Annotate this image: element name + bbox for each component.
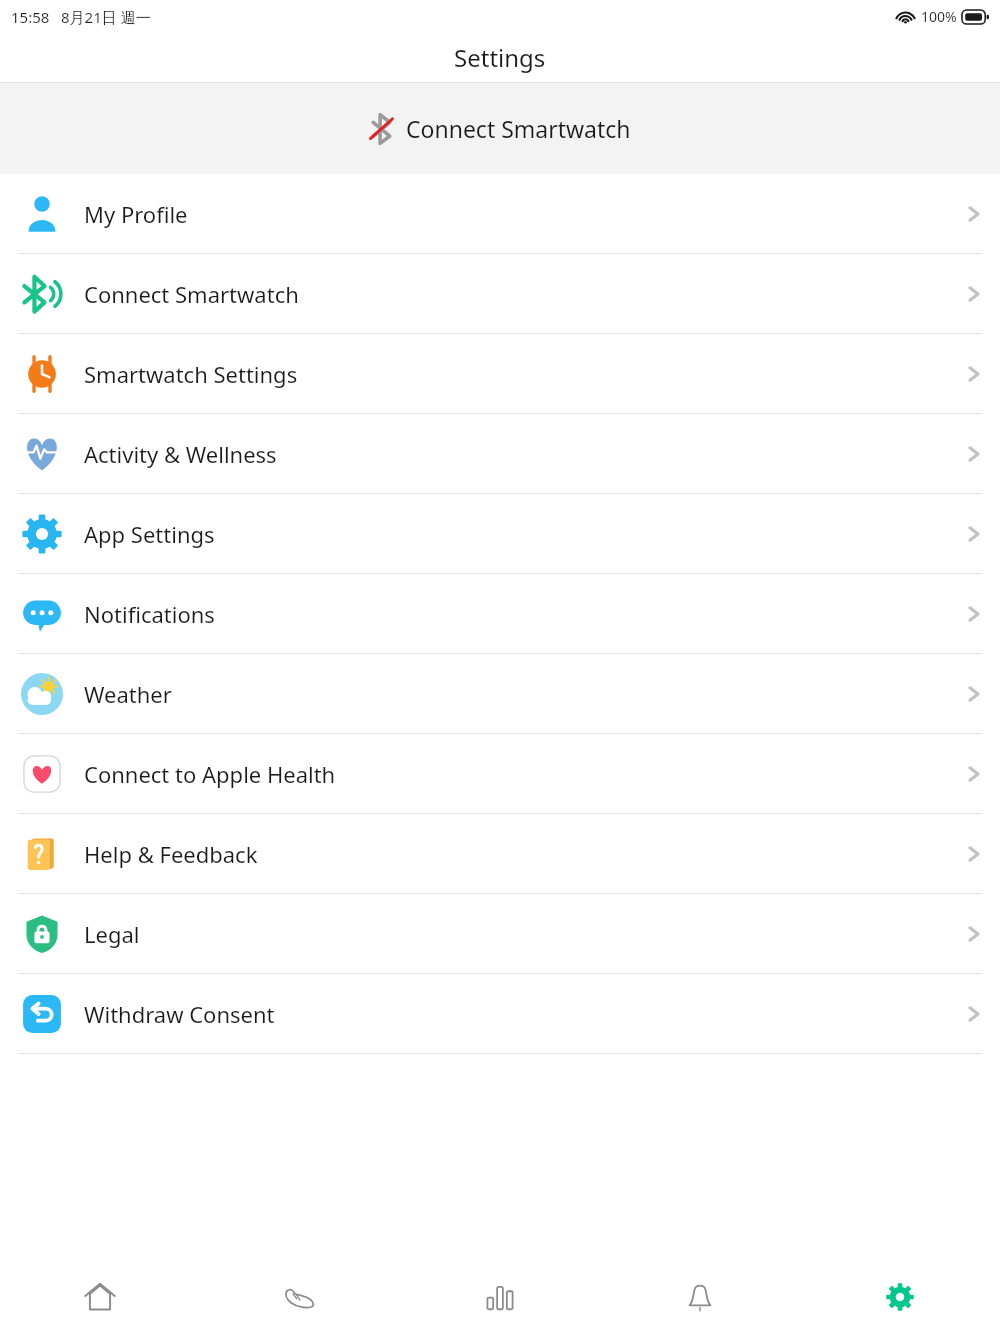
button[interactable]: My Profile: [0, 174, 1000, 253]
button[interactable]: Smartwatch Settings: [0, 334, 1000, 413]
staticText: Connect Smartwatch: [406, 113, 631, 144]
staticText: Settings: [454, 41, 546, 74]
button[interactable]: Home: [0, 1260, 200, 1334]
staticText: Notifications: [84, 599, 966, 629]
staticText: Weather: [84, 679, 966, 709]
staticText: Legal: [84, 919, 966, 949]
button[interactable]: Connect Smartwatch: [0, 83, 1000, 174]
staticText: My Profile: [84, 199, 966, 229]
button[interactable]: Connect Smartwatch: [0, 254, 1000, 333]
button[interactable]: Activity & Wellness: [0, 414, 1000, 493]
staticText: Connect to Apple Health: [84, 759, 966, 789]
staticText: Withdraw Consent: [84, 999, 966, 1029]
button[interactable]: Weather: [0, 654, 1000, 733]
staticText: 15:58: [11, 7, 50, 27]
staticText: 100%: [921, 7, 957, 26]
button[interactable]: Withdraw Consent: [0, 974, 1000, 1053]
button[interactable]: Legal: [0, 894, 1000, 973]
button[interactable]: App Settings: [0, 494, 1000, 573]
staticText: Activity & Wellness: [84, 439, 966, 469]
button[interactable]: Notifications: [0, 574, 1000, 653]
staticText: Help & Feedback: [84, 839, 966, 869]
button[interactable]: Help & Feedback: [0, 814, 1000, 893]
staticText: Connect Smartwatch: [84, 279, 966, 309]
staticText: 8月21日 週一: [61, 7, 151, 27]
button[interactable]: Statistics: [400, 1260, 600, 1334]
staticText: Smartwatch Settings: [84, 359, 966, 389]
button[interactable]: Connect to Apple Health: [0, 734, 1000, 813]
button[interactable]: Activity: [200, 1260, 400, 1334]
button[interactable]: Settings: [800, 1260, 1000, 1334]
staticText: App Settings: [84, 519, 966, 549]
button[interactable]: Alerts: [600, 1260, 800, 1334]
